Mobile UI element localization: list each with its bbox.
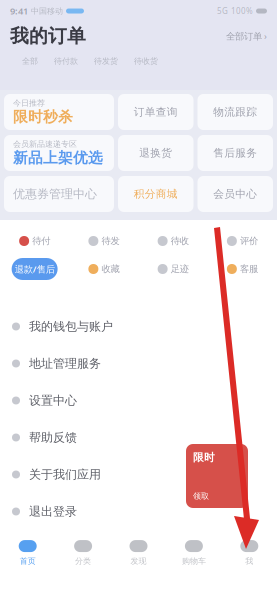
- button[interactable]: 待发货: [86, 56, 126, 66]
- staticText: 我: [245, 556, 253, 566]
- staticText: 收藏: [101, 263, 119, 275]
- staticText: 限时秒杀: [13, 108, 73, 126]
- staticText: 足迹: [171, 263, 189, 275]
- staticText: 会员中心: [213, 187, 257, 200]
- staticText: 待收货: [134, 56, 158, 66]
- staticText: 帮助反馈: [29, 430, 77, 445]
- staticText: 待付款: [54, 56, 78, 66]
- button[interactable]: 售后服务: [197, 135, 273, 171]
- button[interactable]: 待付: [0, 235, 69, 247]
- button[interactable]: 退款/售后: [0, 258, 69, 280]
- staticText: 客服: [240, 263, 258, 275]
- staticText: 中国移动: [31, 6, 63, 16]
- button[interactable]: 限时: [186, 444, 248, 508]
- button[interactable]: 优惠券管理中心: [4, 176, 114, 212]
- button[interactable]: 关于我们应用: [0, 456, 277, 493]
- button[interactable]: 待收: [138, 235, 208, 247]
- button[interactable]: 今日推荐: [4, 94, 114, 130]
- button[interactable]: 待收货: [126, 56, 166, 66]
- staticText: 我的订单: [10, 24, 86, 47]
- button[interactable]: 设置中心: [0, 382, 277, 419]
- button[interactable]: 客服: [208, 263, 277, 275]
- staticText: 购物车: [182, 556, 206, 566]
- button[interactable]: 分类: [55, 540, 111, 566]
- staticText: 退换货: [139, 146, 172, 159]
- staticText: 今日推荐: [13, 98, 45, 108]
- staticText: 领取: [193, 491, 209, 501]
- button[interactable]: 会员新品速递专区: [4, 135, 114, 171]
- button[interactable]: 我的钱包与账户: [0, 308, 277, 345]
- button[interactable]: 退换货: [118, 135, 193, 171]
- staticText: 关于我们应用: [29, 467, 101, 482]
- button[interactable]: 发现: [111, 540, 166, 566]
- button[interactable]: 退出登录: [0, 493, 277, 530]
- button[interactable]: 评价: [208, 235, 277, 247]
- button[interactable]: 待付款: [46, 56, 86, 66]
- staticText: 新品上架优选: [13, 149, 103, 167]
- button[interactable]: 订单查询: [118, 94, 193, 130]
- staticText: 待发: [101, 235, 119, 247]
- staticText: 订单查询: [134, 105, 178, 118]
- staticText: 优惠券管理中心: [13, 187, 97, 201]
- button[interactable]: 收藏: [69, 263, 138, 275]
- staticText: 分类: [75, 556, 91, 566]
- staticText: 待付: [32, 235, 50, 247]
- button[interactable]: 全部: [14, 56, 46, 66]
- staticText: 全部: [22, 56, 38, 66]
- staticText: 设置中心: [29, 393, 77, 408]
- staticText: 首页: [20, 556, 36, 566]
- staticText: 发现: [130, 556, 146, 566]
- button[interactable]: 地址管理服务: [0, 345, 277, 382]
- staticText: 积分商城: [134, 187, 178, 200]
- staticText: 待收: [171, 235, 189, 247]
- staticText: 退出登录: [29, 504, 77, 519]
- button[interactable]: 会员中心: [197, 176, 273, 212]
- staticText: 退款/售后: [15, 263, 55, 275]
- staticText: 待发货: [94, 56, 118, 66]
- staticText: 限时: [193, 451, 215, 464]
- staticText: 售后服务: [213, 146, 257, 159]
- button[interactable]: 帮助反馈: [0, 419, 277, 456]
- button[interactable]: 待发: [69, 235, 138, 247]
- button[interactable]: 我: [222, 540, 277, 566]
- staticText: 5G: [217, 6, 228, 16]
- staticText: 地址管理服务: [29, 356, 101, 371]
- button[interactable]: 首页: [0, 540, 55, 566]
- staticText: 全部订单 ›: [226, 30, 267, 42]
- button[interactable]: 物流跟踪: [197, 94, 273, 130]
- button[interactable]: 购物车: [166, 540, 222, 566]
- staticText: 9:41: [10, 5, 28, 17]
- button[interactable]: 全部订单 ›: [226, 30, 267, 42]
- staticText: 评价: [240, 235, 258, 247]
- button[interactable]: 足迹: [138, 263, 208, 275]
- staticText: 100%: [231, 6, 253, 16]
- staticText: 会员新品速递专区: [13, 139, 77, 149]
- button[interactable]: 积分商城: [118, 176, 193, 212]
- staticText: 物流跟踪: [213, 105, 257, 118]
- staticText: 我的钱包与账户: [29, 319, 113, 334]
